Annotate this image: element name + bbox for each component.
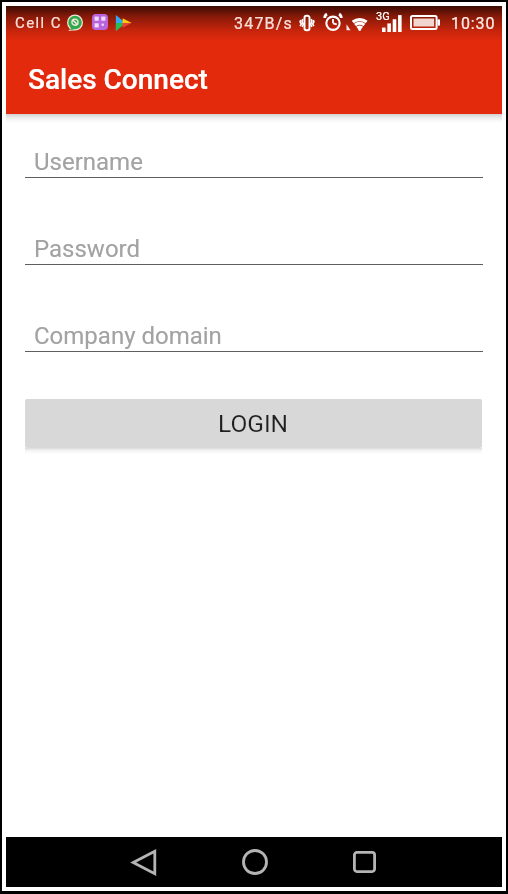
staticText: Company domain	[34, 322, 222, 350]
button[interactable]: Username	[25, 130, 483, 178]
staticText: 347B/s	[234, 14, 294, 33]
button[interactable]: Home	[214, 837, 295, 887]
staticText: Sales Connect	[28, 63, 208, 96]
button[interactable]: Recents	[324, 837, 404, 887]
staticText: 10:30	[451, 14, 496, 33]
staticText: Password	[34, 235, 141, 263]
staticText: Username	[34, 148, 143, 176]
button[interactable]: Password	[25, 217, 483, 265]
button[interactable]: LOGIN	[25, 399, 482, 448]
button[interactable]: Back	[104, 837, 184, 887]
staticText: 3G	[376, 10, 390, 23]
button[interactable]: Company domain	[25, 304, 483, 352]
staticText: Cell C	[15, 14, 62, 32]
staticText: LOGIN	[218, 409, 289, 438]
